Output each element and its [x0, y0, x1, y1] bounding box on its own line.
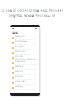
staticText: 배송 시작	[15, 70, 24, 73]
button[interactable]: 알림	[10, 30, 39, 35]
staticText: 새로운 소식	[15, 35, 25, 38]
button[interactable]: 새로운 소식	[10, 35, 39, 40]
button[interactable]: 배송 시작	[10, 70, 39, 75]
staticText: 어떻게든 방법을 찾아 보는 것	[0, 13, 64, 18]
staticText: 공지사항	[15, 55, 23, 57]
staticText: 오늘 확인해야 할 내용이 있습니다요	[15, 39, 37, 40]
button[interactable]: 포인트 적립	[10, 80, 39, 85]
staticText: 알림	[12, 31, 18, 35]
button[interactable]: 업데이트 알림	[10, 40, 39, 45]
staticText: 서비스 점검 안내를 확인하세요	[15, 58, 37, 60]
staticText: 새 버전이 출시되었어요 지금 확인	[15, 44, 37, 45]
staticText: 새로운 메시지가 도착했습니다	[15, 54, 37, 55]
staticText: 주문하신 상품의 결제가 완료	[15, 69, 37, 70]
staticText: 이번 주 특별 이벤트가 열립니다	[15, 64, 37, 65]
staticText: 그 사람이 어디서 무엇을 하든 찾아내서	[0, 8, 64, 13]
staticText: 메시지 도착	[15, 50, 25, 53]
staticText: 결제 완료	[15, 65, 24, 68]
staticText: 적립된 포인트를 확인해보세요	[15, 84, 37, 85]
staticText: 보유 쿠폰이 곧 만료됩니다	[15, 89, 35, 90]
staticText: 리뷰 요청	[15, 75, 24, 78]
staticText: 이벤트 안내	[15, 60, 25, 63]
button[interactable]: 공지사항	[10, 55, 39, 60]
staticText: 쿠폰 만료	[15, 85, 24, 88]
staticText: 업데이트 알림	[15, 40, 27, 43]
staticText: 회원님께 친구 요청을 보냈습니다	[15, 49, 37, 50]
button[interactable]: 친구 요청	[10, 45, 39, 50]
staticText: 상품이 배송을 시작했습니다	[15, 74, 37, 75]
button[interactable]: 메시지 도착	[10, 50, 39, 55]
button[interactable]: 결제 완료	[10, 65, 39, 70]
staticText: 구매하신 상품은 어떠셨나요	[15, 79, 37, 80]
button[interactable]: 쿠폰 만료	[10, 85, 39, 90]
staticText: 포인트 적립	[15, 80, 25, 83]
button[interactable]: 리뷰 요청	[10, 75, 39, 80]
staticText: 친구 요청	[15, 45, 24, 48]
button[interactable]: 이벤트 안내	[10, 60, 39, 65]
